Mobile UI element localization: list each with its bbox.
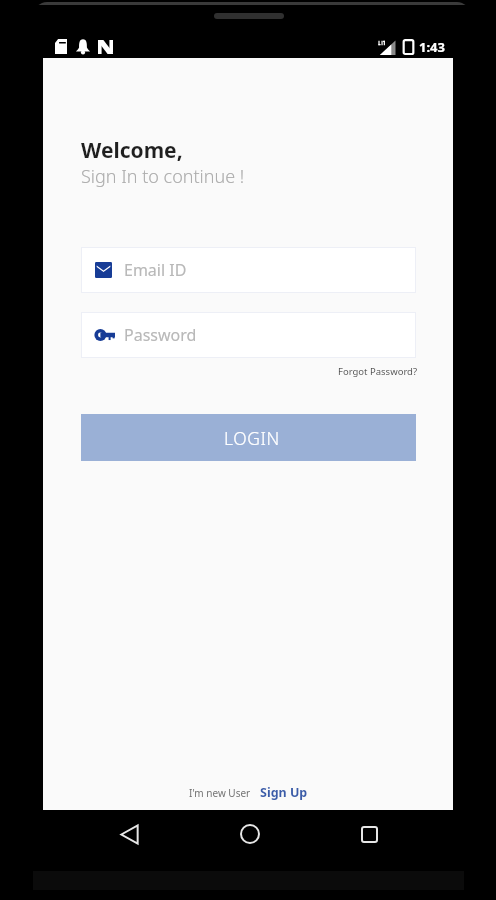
staticText: Sign Up [260,784,308,801]
button[interactable]: Recents [345,810,393,858]
staticText: I'm new User [189,786,251,800]
button[interactable]: Forgot Password? [338,365,418,378]
button[interactable]: LOGIN [81,414,416,461]
staticText: Welcome, [81,136,183,165]
staticText: Forgot Password? [338,365,418,378]
staticText: LOGIN [224,426,280,450]
staticText: Sign In to continue ! [81,164,245,189]
button[interactable]: Password [81,312,416,358]
button[interactable]: Email ID [81,247,416,293]
staticText: Email ID [124,259,187,281]
button[interactable]: Back [105,810,153,858]
staticText: Password [124,324,197,346]
staticText: 1:43 [419,38,445,56]
button[interactable]: Sign Up [260,784,308,801]
button[interactable]: Home [226,810,274,858]
